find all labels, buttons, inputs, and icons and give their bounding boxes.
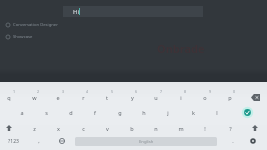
staticText: ?123 (8, 138, 19, 145)
staticText: s (45, 109, 48, 116)
staticText: 2 (37, 89, 40, 94)
button[interactable]: n (144, 121, 168, 135)
staticText: h (142, 109, 146, 116)
button[interactable]: f (83, 105, 107, 119)
button[interactable]: s (34, 105, 58, 119)
staticText: 5 (111, 89, 114, 94)
staticText: 7 (160, 89, 163, 94)
staticText: j (167, 109, 169, 116)
staticText: Conversation Designer (13, 22, 58, 28)
button[interactable]: u (144, 90, 168, 104)
staticText: d (69, 109, 73, 116)
button[interactable]: v (95, 121, 119, 135)
staticText: 6 (135, 89, 138, 94)
staticText: x (57, 125, 60, 132)
button[interactable]: b (120, 121, 144, 135)
button[interactable]: a (10, 105, 34, 119)
staticText: Onbrade (157, 41, 205, 56)
button[interactable]: Change language (50, 134, 74, 148)
staticText: u (154, 94, 158, 101)
button[interactable]: j (156, 105, 180, 119)
button[interactable]: t (95, 90, 119, 104)
staticText: n (154, 125, 158, 132)
button[interactable]: l (205, 105, 229, 119)
staticText: 4 (86, 89, 89, 94)
staticText: o (203, 94, 207, 101)
staticText: 3 (62, 89, 65, 94)
button[interactable]: o (193, 90, 217, 104)
staticText: English (139, 139, 154, 145)
button[interactable]: p (218, 90, 242, 104)
staticText: i (180, 94, 182, 101)
button[interactable]: English (75, 137, 217, 146)
button[interactable]: m (169, 121, 193, 135)
staticText: ! (204, 125, 206, 132)
staticText: z (33, 125, 36, 132)
staticText: b (130, 125, 134, 132)
button[interactable]: Enter (235, 105, 259, 119)
staticText: f (94, 109, 96, 116)
button[interactable]: Hi (63, 6, 203, 17)
button[interactable]: k (181, 105, 205, 119)
staticText: a (20, 109, 24, 116)
staticText: m (178, 125, 184, 132)
staticText: v (106, 125, 109, 132)
staticText: g (118, 109, 122, 116)
staticText: k (192, 109, 195, 116)
button[interactable]: Conversation Designer (5, 21, 58, 29)
button[interactable]: c (71, 121, 95, 135)
button[interactable]: q (0, 90, 21, 104)
button[interactable]: w (22, 90, 46, 104)
button[interactable]: h (132, 105, 156, 119)
staticText: w (32, 94, 37, 101)
button[interactable]: Shift (0, 121, 21, 135)
staticText: , (38, 137, 40, 144)
staticText: q (7, 94, 11, 101)
button[interactable]: ! (193, 121, 217, 135)
button[interactable]: Shift (243, 121, 267, 135)
button[interactable]: z (22, 121, 46, 135)
staticText: . (232, 137, 234, 144)
button[interactable]: i (169, 90, 193, 104)
button[interactable]: e (46, 90, 70, 104)
staticText: e (56, 94, 60, 101)
staticText: 1 (13, 89, 16, 94)
staticText: t (106, 94, 108, 101)
staticText: y (131, 94, 134, 101)
button[interactable]: r (71, 90, 95, 104)
button[interactable]: y (120, 90, 144, 104)
staticText: r (82, 94, 85, 101)
staticText: l (216, 109, 218, 116)
button[interactable]: Backspace (243, 90, 267, 104)
button[interactable]: x (46, 121, 70, 135)
button[interactable]: d (59, 105, 83, 119)
staticText: 8 (184, 89, 187, 94)
staticText: Hi (73, 8, 79, 16)
button[interactable]: g (108, 105, 132, 119)
staticText: 0 (233, 89, 236, 94)
staticText: 9 (209, 89, 212, 94)
staticText: Showcase (13, 34, 33, 40)
button[interactable]: ? (218, 121, 242, 135)
staticText: c (82, 125, 85, 132)
staticText: ? (229, 125, 232, 132)
staticText: p (228, 94, 232, 101)
button[interactable]: Emoji (241, 134, 265, 148)
button[interactable]: Showcase (5, 33, 33, 41)
button[interactable]: ?123 (1, 134, 25, 148)
